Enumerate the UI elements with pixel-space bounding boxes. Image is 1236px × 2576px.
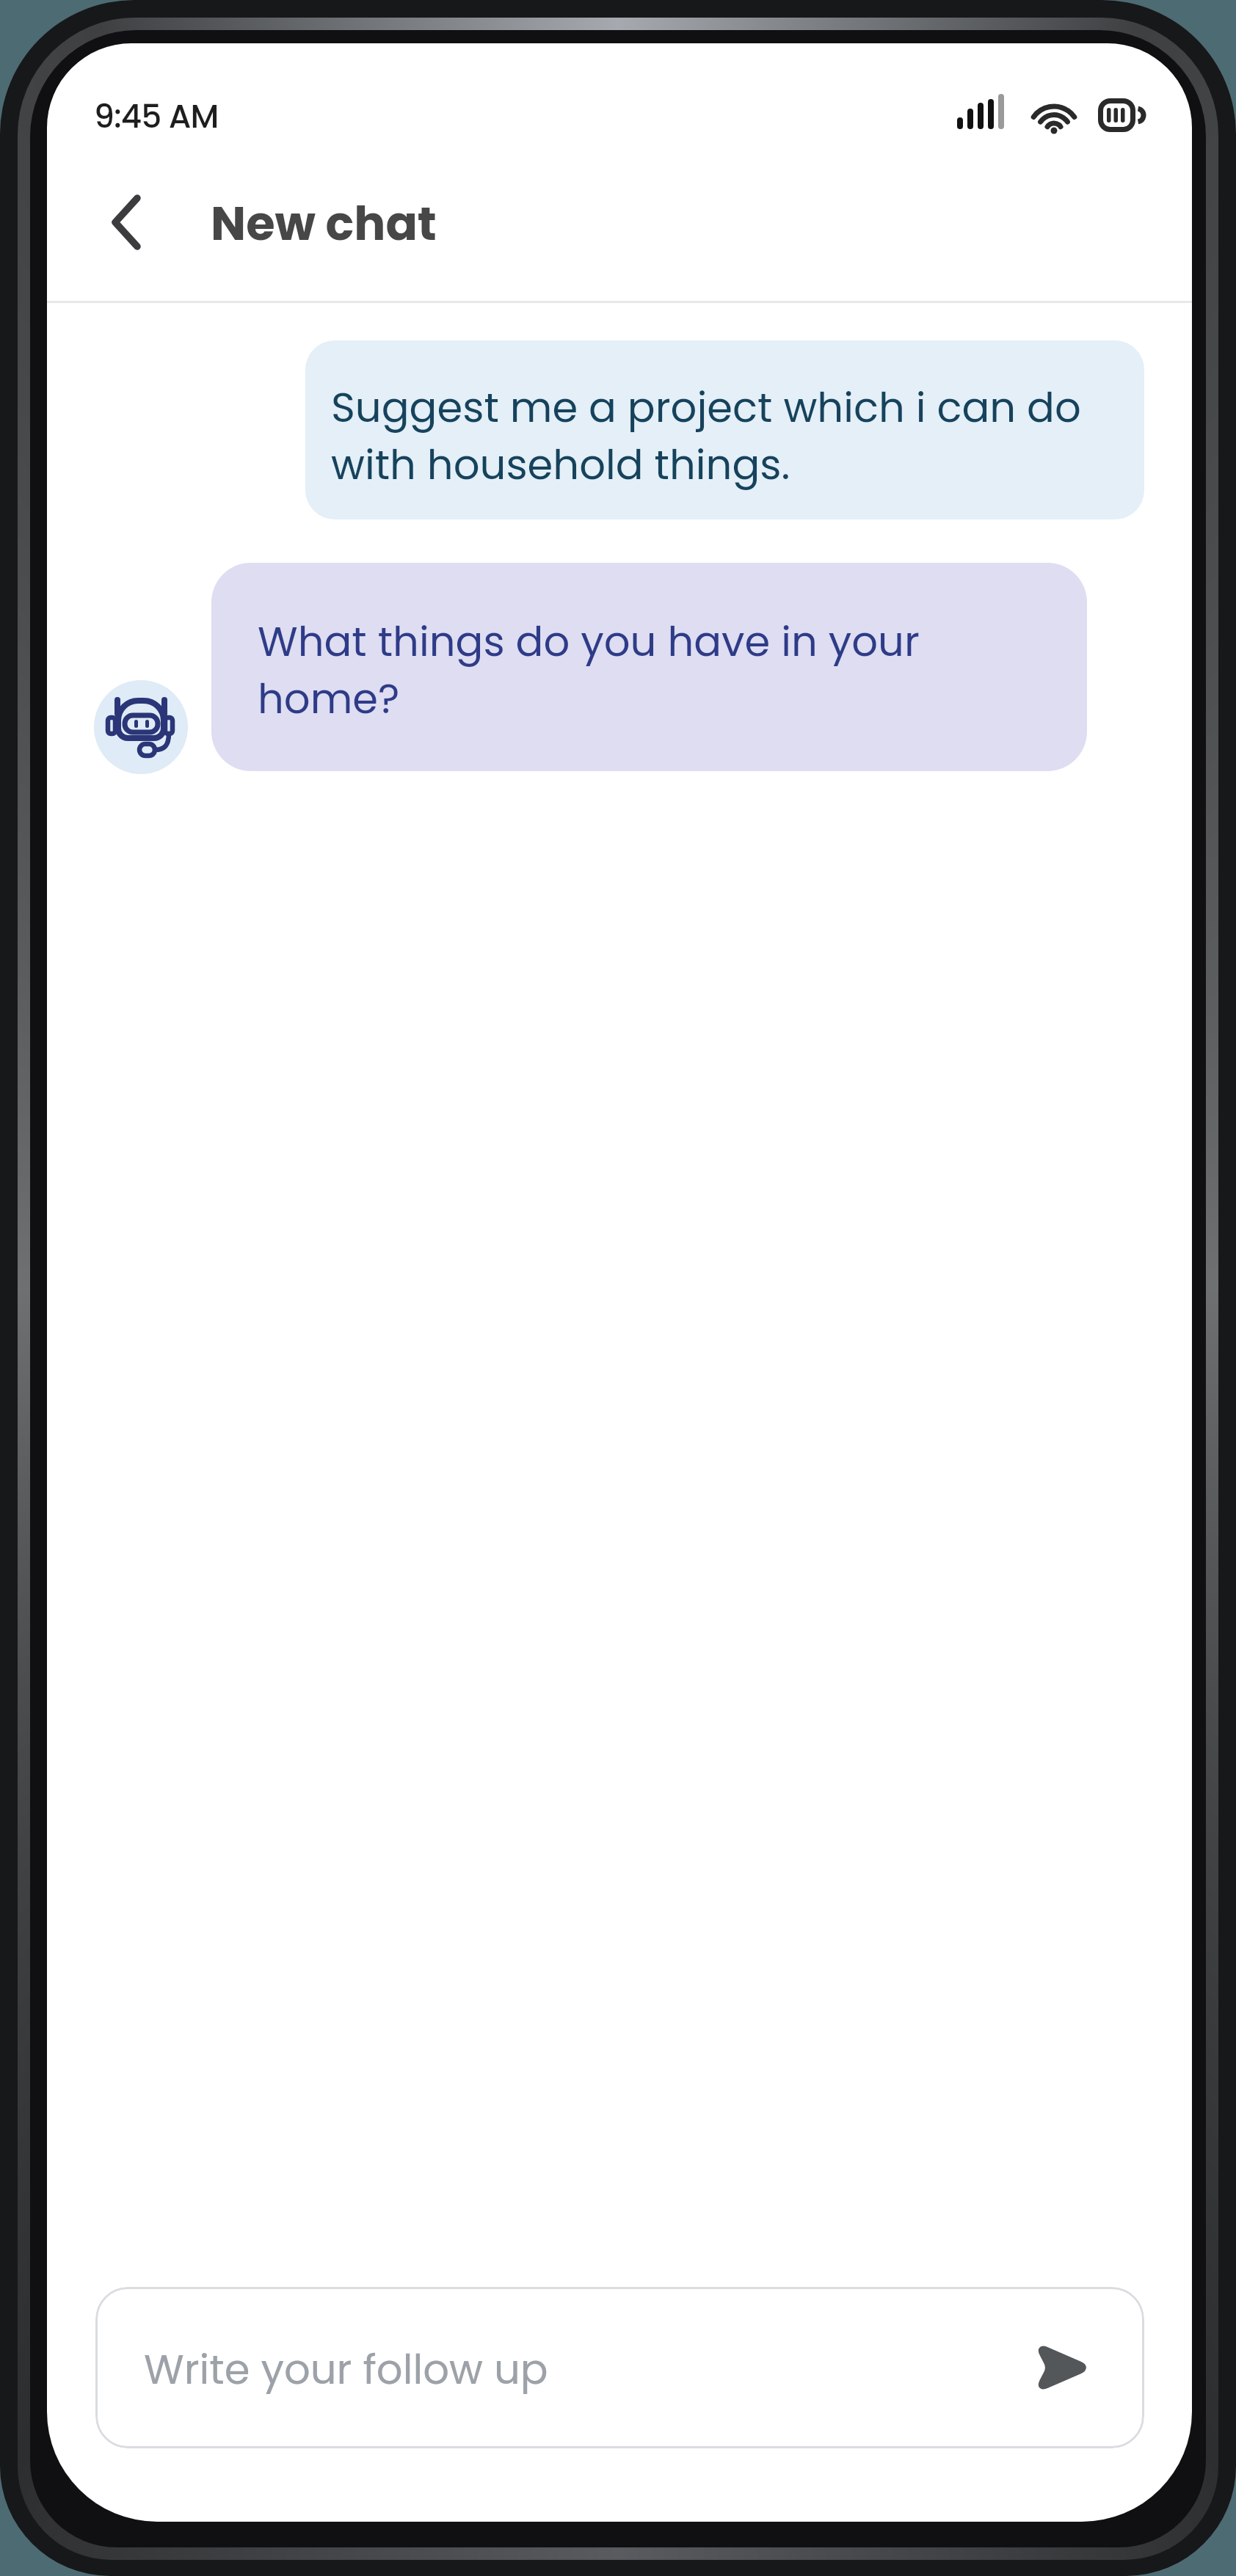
staticText: 9:45 AM (94, 94, 219, 139)
button[interactable]: Write your follow up (95, 2287, 1144, 2448)
staticText: Suggest me a project which i can do with… (331, 379, 1081, 494)
button[interactable] (1013, 2331, 1116, 2404)
button[interactable] (91, 174, 164, 269)
staticText: What things do you have in your home? (258, 613, 920, 728)
staticText: Write your follow up (144, 2340, 548, 2398)
staticText: New chat (211, 191, 437, 257)
